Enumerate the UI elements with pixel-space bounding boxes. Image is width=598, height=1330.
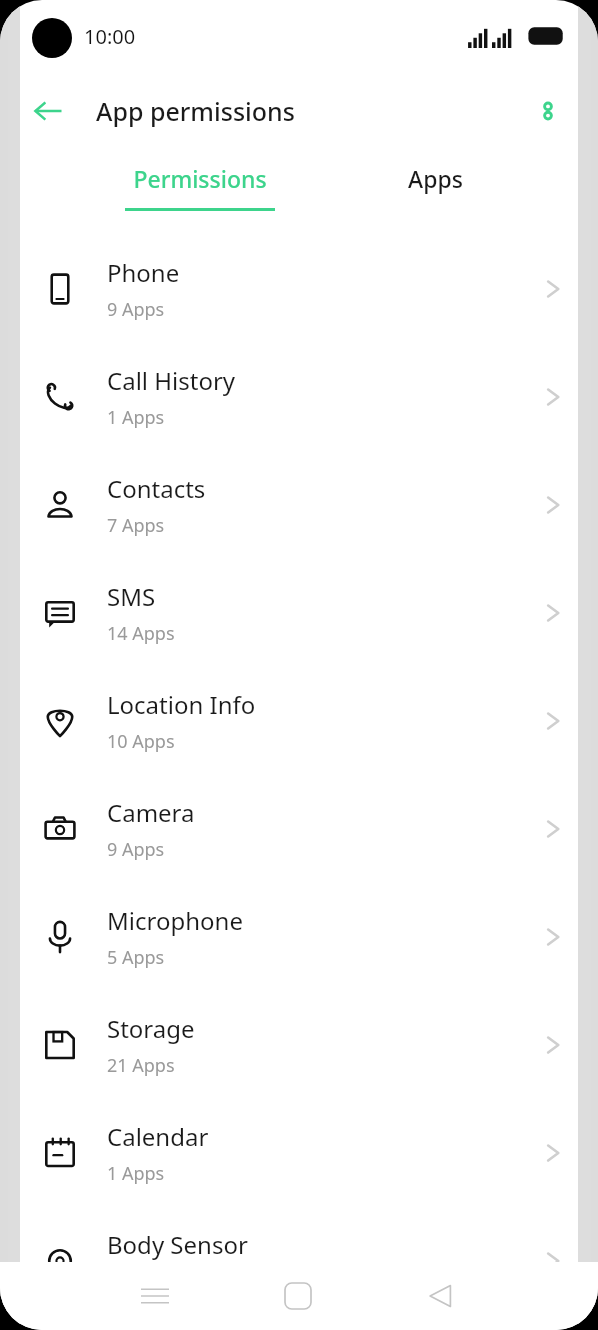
staticText: Contacts (107, 472, 206, 505)
staticText: Camera (107, 796, 195, 829)
staticText: 10 Apps (107, 729, 175, 754)
staticText: 9 Apps (107, 297, 165, 322)
button[interactable]: Camera (0, 775, 598, 883)
staticText: Microphone (107, 904, 243, 937)
button[interactable]: Storage (0, 991, 598, 1099)
staticText: Location Info (107, 688, 256, 721)
button[interactable]: Back (412, 1268, 468, 1324)
button[interactable]: Phone (0, 235, 598, 343)
button[interactable]: SMS (0, 559, 598, 667)
staticText: Apps (408, 163, 463, 194)
staticText: App permissions (96, 94, 295, 128)
staticText: 21 Apps (107, 1053, 175, 1078)
button[interactable]: Body Sensor (0, 1207, 598, 1315)
staticText: SMS (107, 580, 156, 613)
button[interactable]: More options (524, 87, 572, 135)
button[interactable]: Contacts (0, 451, 598, 559)
button[interactable]: Permissions (100, 147, 300, 235)
staticText: Permissions (133, 163, 267, 194)
button[interactable]: Recent apps (127, 1268, 183, 1324)
staticText: 10:00 (84, 23, 136, 50)
staticText: 2 Apps (107, 1269, 165, 1294)
staticText: 7 Apps (107, 513, 165, 538)
staticText: Calendar (107, 1120, 209, 1153)
staticText: Call History (107, 364, 236, 397)
button[interactable]: Call History (0, 343, 598, 451)
staticText: 5 Apps (107, 945, 165, 970)
button[interactable]: Location Info (0, 667, 598, 775)
staticText: Phone (107, 256, 180, 289)
staticText: 1 Apps (107, 1161, 165, 1186)
staticText: 1 Apps (107, 405, 165, 430)
button[interactable]: Back (20, 83, 76, 139)
staticText: Body Sensor (107, 1228, 248, 1261)
button[interactable]: Apps (340, 147, 530, 235)
button[interactable]: Microphone (0, 883, 598, 991)
staticText: Storage (107, 1012, 195, 1045)
staticText: 14 Apps (107, 621, 175, 646)
button[interactable]: Home (270, 1268, 326, 1324)
button[interactable]: Calendar (0, 1099, 598, 1207)
staticText: 9 Apps (107, 837, 165, 862)
